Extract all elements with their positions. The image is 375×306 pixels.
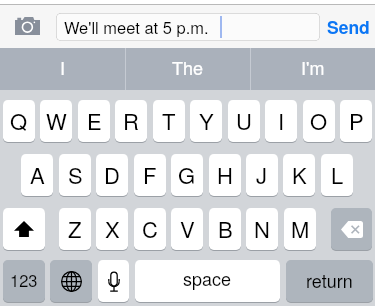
staticText: A [30, 159, 45, 191]
staticText: I'm [301, 54, 325, 80]
button[interactable]: I'm [250, 48, 375, 90]
button[interactable]: B [209, 208, 241, 250]
button[interactable]: C [134, 208, 166, 250]
button[interactable]: K [283, 154, 315, 196]
button[interactable]: O [303, 100, 335, 142]
staticText: J [256, 159, 268, 191]
staticText: H [217, 159, 233, 191]
staticText: W [46, 105, 67, 137]
button[interactable]: S [59, 154, 91, 196]
button[interactable]: Shift [3, 208, 45, 250]
button[interactable]: return [286, 260, 373, 302]
button[interactable]: U [228, 100, 260, 142]
staticText: Y [199, 105, 214, 137]
button[interactable]: space [135, 260, 280, 302]
button[interactable]: X [96, 208, 128, 250]
staticText: U [236, 105, 252, 137]
staticText: Q [10, 105, 28, 137]
button[interactable]: R [115, 100, 147, 142]
button[interactable]: Camera [6, 10, 49, 41]
button[interactable]: P [340, 100, 372, 142]
staticText: I [278, 105, 285, 137]
button[interactable]: T [153, 100, 185, 142]
button[interactable]: I [0, 48, 125, 90]
staticText: E [87, 105, 102, 137]
button[interactable]: Next keyboard [50, 260, 92, 302]
button[interactable]: I [265, 100, 297, 142]
button[interactable]: Q [3, 100, 35, 142]
staticText: D [104, 159, 120, 191]
button[interactable]: D [96, 154, 128, 196]
staticText: R [123, 105, 139, 137]
button[interactable]: Z [59, 208, 91, 250]
button[interactable]: We'll meet at 5 p.m. [56, 13, 320, 41]
button[interactable]: A [21, 154, 53, 196]
staticText: space [183, 265, 232, 291]
button[interactable]: G [171, 154, 203, 196]
staticText: O [310, 105, 328, 137]
staticText: K [292, 159, 307, 191]
staticText: F [143, 159, 157, 191]
button[interactable]: N [246, 208, 278, 250]
button[interactable]: Y [190, 100, 222, 142]
staticText: C [142, 213, 158, 245]
button[interactable]: 123 [3, 260, 45, 302]
staticText: I [60, 54, 66, 80]
button[interactable]: Delete [331, 208, 372, 250]
button[interactable]: V [171, 208, 203, 250]
button[interactable]: E [78, 100, 110, 142]
staticText: X [105, 213, 120, 245]
button[interactable]: H [209, 154, 241, 196]
button[interactable]: W [40, 100, 72, 142]
staticText: M [291, 213, 310, 245]
staticText: Send [327, 14, 370, 39]
staticText: S [68, 159, 83, 191]
button[interactable]: F [134, 154, 166, 196]
staticText: G [178, 159, 196, 191]
staticText: N [254, 213, 270, 245]
staticText: return [306, 267, 353, 293]
staticText: We'll meet at 5 p.m. [64, 15, 209, 39]
button[interactable]: L [321, 154, 353, 196]
staticText: L [331, 159, 344, 191]
staticText: B [218, 213, 233, 245]
staticText: Z [68, 213, 82, 245]
staticText: T [162, 105, 176, 137]
button[interactable]: J [246, 154, 278, 196]
button[interactable]: The [125, 48, 250, 90]
button[interactable]: Dictate [98, 260, 129, 302]
button[interactable]: Send [323, 11, 373, 41]
staticText: The [172, 54, 204, 80]
button[interactable]: M [284, 208, 316, 250]
staticText: P [349, 105, 364, 137]
staticText: 123 [10, 268, 38, 292]
staticText: V [180, 213, 195, 245]
